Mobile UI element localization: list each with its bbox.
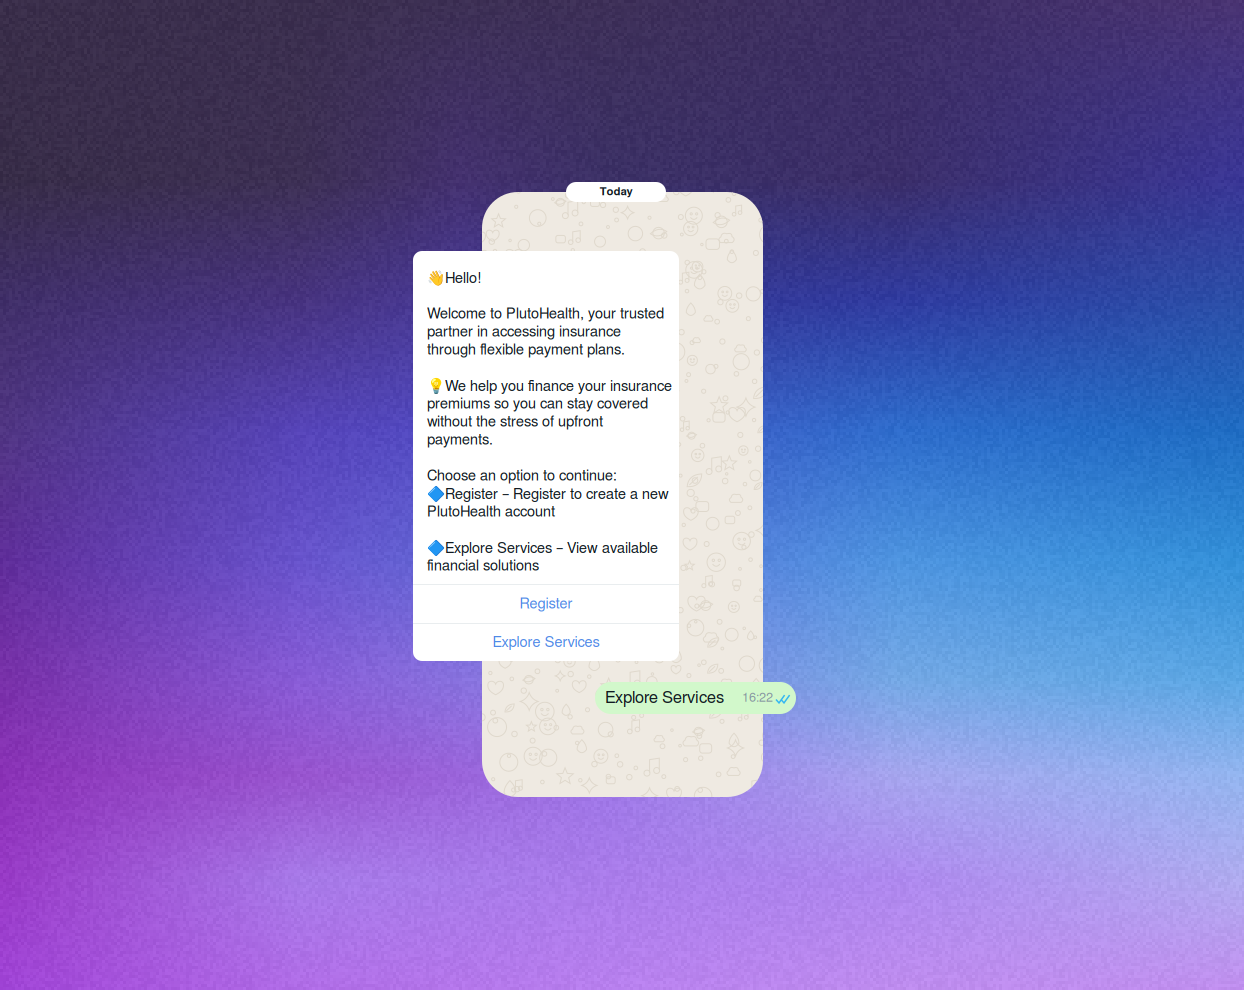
- staticText: 16:22: [742, 692, 773, 704]
- staticText: PlutoHealth account: [427, 505, 555, 519]
- staticText: Explore Services: [492, 635, 599, 650]
- staticText: payments.: [427, 433, 493, 447]
- staticText: partner in accessing insurance: [427, 325, 621, 339]
- staticText: 🔷Register – Register to create a new: [427, 485, 669, 503]
- staticText: without the stress of upfront: [427, 415, 603, 429]
- staticText: premiums so you can stay covered: [427, 397, 648, 411]
- staticText: Explore Services: [605, 690, 724, 706]
- staticText: 🔷Explore Services – View available: [427, 539, 658, 557]
- button[interactable]: Register: [413, 585, 679, 623]
- staticText: 💡We help you finance your insurance: [427, 377, 672, 395]
- staticText: through flexible payment plans.: [427, 343, 625, 357]
- staticText: Today: [599, 186, 632, 198]
- staticText: financial solutions: [427, 559, 539, 573]
- staticText: Register: [519, 597, 572, 611]
- staticText: Welcome to PlutoHealth, your trusted: [427, 307, 664, 321]
- staticText: Choose an option to continue:: [427, 469, 617, 483]
- button[interactable]: Explore Services: [413, 624, 679, 661]
- staticText: 👋Hello!: [427, 269, 482, 287]
